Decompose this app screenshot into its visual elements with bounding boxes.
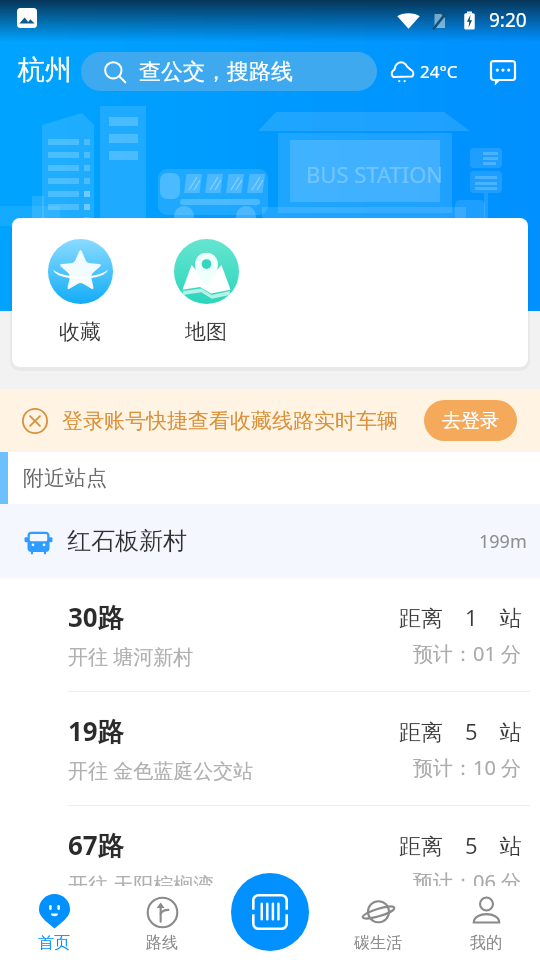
staticText: 距离 1 站 — [399, 602, 522, 632]
staticText: 首页 — [38, 933, 70, 953]
button[interactable]: 路线 — [108, 886, 216, 960]
button[interactable]: 去登录 — [424, 400, 517, 441]
button[interactable]: 收藏 — [46, 239, 114, 345]
staticText: 收藏 — [59, 319, 101, 345]
staticText: 查公交，搜路线 — [139, 58, 293, 86]
staticText: 红石板新村 — [67, 526, 187, 556]
staticText: 预计：10 分 — [413, 754, 522, 781]
staticText: 开往 金色蓝庭公交站 — [68, 757, 254, 784]
staticText: 去登录 — [442, 409, 499, 433]
button[interactable]: 首页 — [0, 886, 108, 960]
staticText: 地图 — [185, 319, 227, 345]
button[interactable]: 19路 — [0, 692, 540, 806]
staticText: 登录账号快捷查看收藏线路实时车辆 — [62, 408, 398, 434]
button[interactable]: Scan code — [231, 873, 309, 951]
button[interactable]: 红石板新村 — [0, 504, 540, 578]
button[interactable]: 杭州 — [18, 53, 72, 87]
staticText: 开往 天阳棕榈湾 — [68, 871, 214, 898]
staticText: 我的 — [470, 933, 502, 953]
staticText: 路线 — [146, 933, 178, 953]
button[interactable]: Weather 24 degrees — [389, 58, 458, 85]
staticText: 30路 — [68, 599, 124, 635]
staticText: 距离 5 站 — [399, 716, 522, 746]
staticText: 67路 — [68, 827, 124, 863]
staticText: 开往 塘河新村 — [68, 643, 194, 670]
button[interactable]: Messages — [488, 56, 518, 86]
button[interactable]: 碳生活 — [324, 886, 432, 960]
staticText: BUS STATION — [306, 159, 444, 189]
staticText: 199m — [479, 529, 527, 554]
staticText: 碳生活 — [354, 933, 402, 953]
staticText: 附近站点 — [23, 465, 107, 491]
staticText: 预计：01 分 — [413, 640, 522, 667]
button[interactable]: Close — [22, 408, 48, 434]
button[interactable]: 67路 — [0, 806, 540, 920]
staticText: 预计：06 分 — [413, 868, 522, 895]
button[interactable]: 地图 — [172, 239, 240, 345]
staticText: 距离 5 站 — [399, 830, 522, 860]
button[interactable]: 查公交，搜路线 — [81, 52, 377, 91]
staticText: 9:20 — [489, 7, 527, 33]
button[interactable]: 30路 — [0, 578, 540, 692]
staticText: 24°C — [420, 60, 458, 83]
staticText: 19路 — [68, 713, 124, 749]
button[interactable]: 我的 — [432, 886, 540, 960]
